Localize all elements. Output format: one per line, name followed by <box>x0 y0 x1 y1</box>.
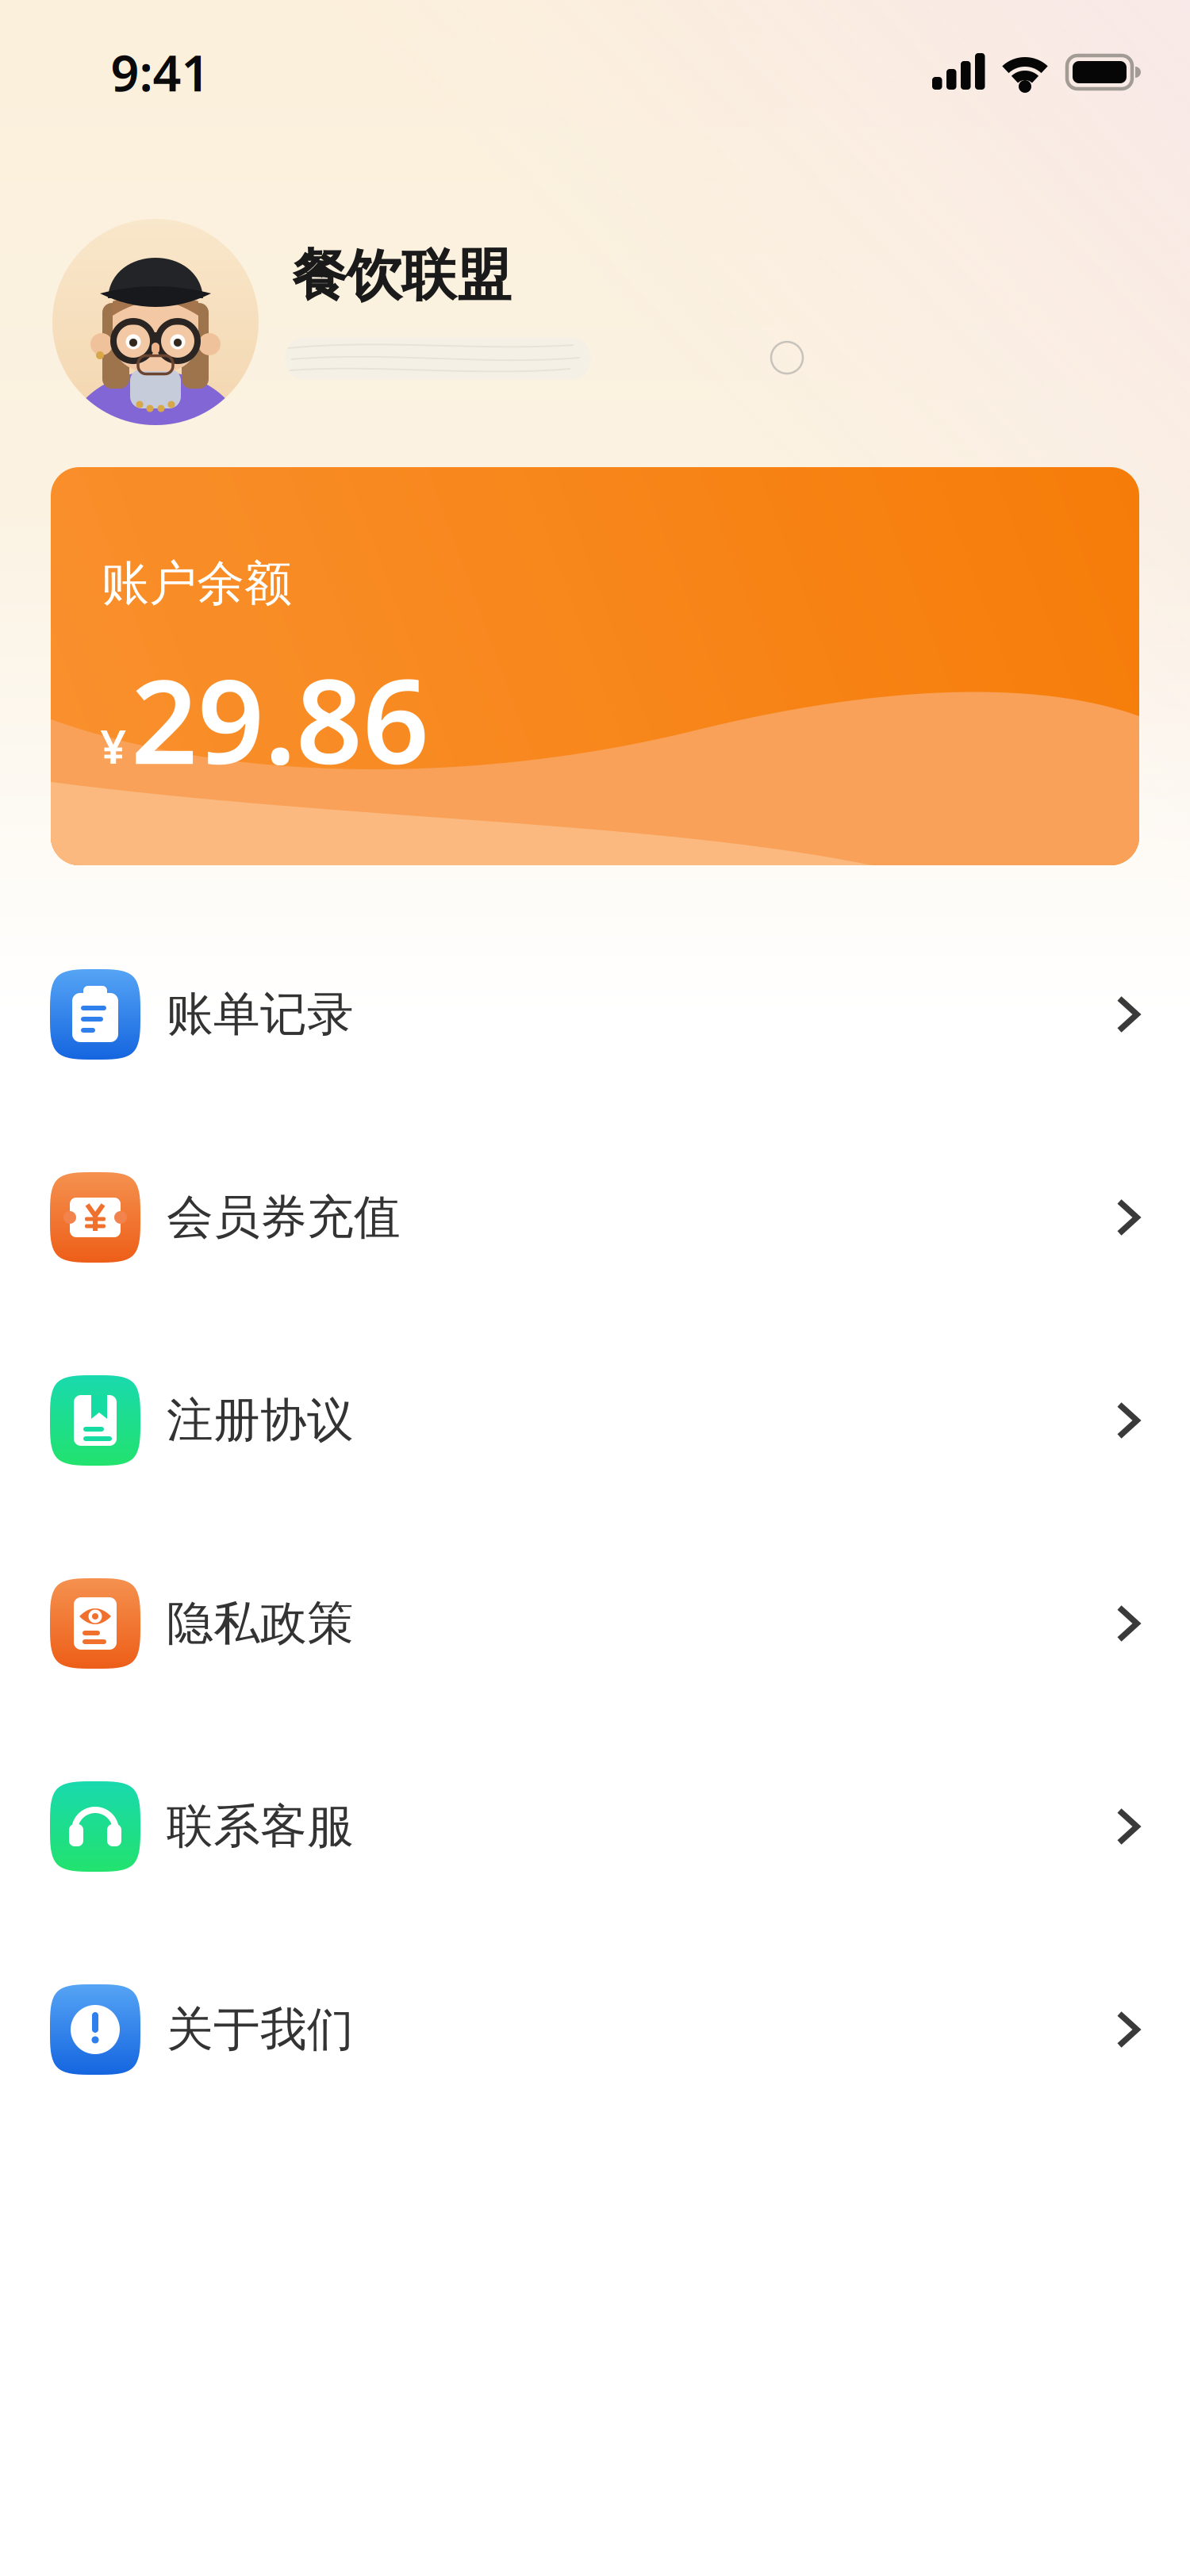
staticText: 9:41 <box>111 39 210 105</box>
button[interactable]: 会员券充值 <box>50 1172 1140 1263</box>
staticText: ¥ <box>100 715 127 777</box>
staticText: 29.86 <box>131 642 429 796</box>
button[interactable]: 账单记录 <box>50 969 1140 1060</box>
staticText: 关于我们 <box>167 2001 354 2058</box>
button[interactable]: 关于我们 <box>50 1984 1140 2075</box>
button[interactable]: 隐私政策 <box>50 1578 1140 1669</box>
staticText: 餐饮联盟 <box>292 242 511 309</box>
staticText: 账户余额 <box>102 554 292 613</box>
button[interactable]: 联系客服 <box>50 1781 1140 1872</box>
staticText: 联系客服 <box>167 1798 354 1855</box>
staticText: 注册协议 <box>167 1392 354 1449</box>
staticText: 账单记录 <box>167 986 354 1043</box>
button[interactable]: 注册协议 <box>50 1375 1140 1466</box>
staticText: 隐私政策 <box>167 1595 354 1652</box>
staticText: 会员券充值 <box>167 1189 401 1246</box>
